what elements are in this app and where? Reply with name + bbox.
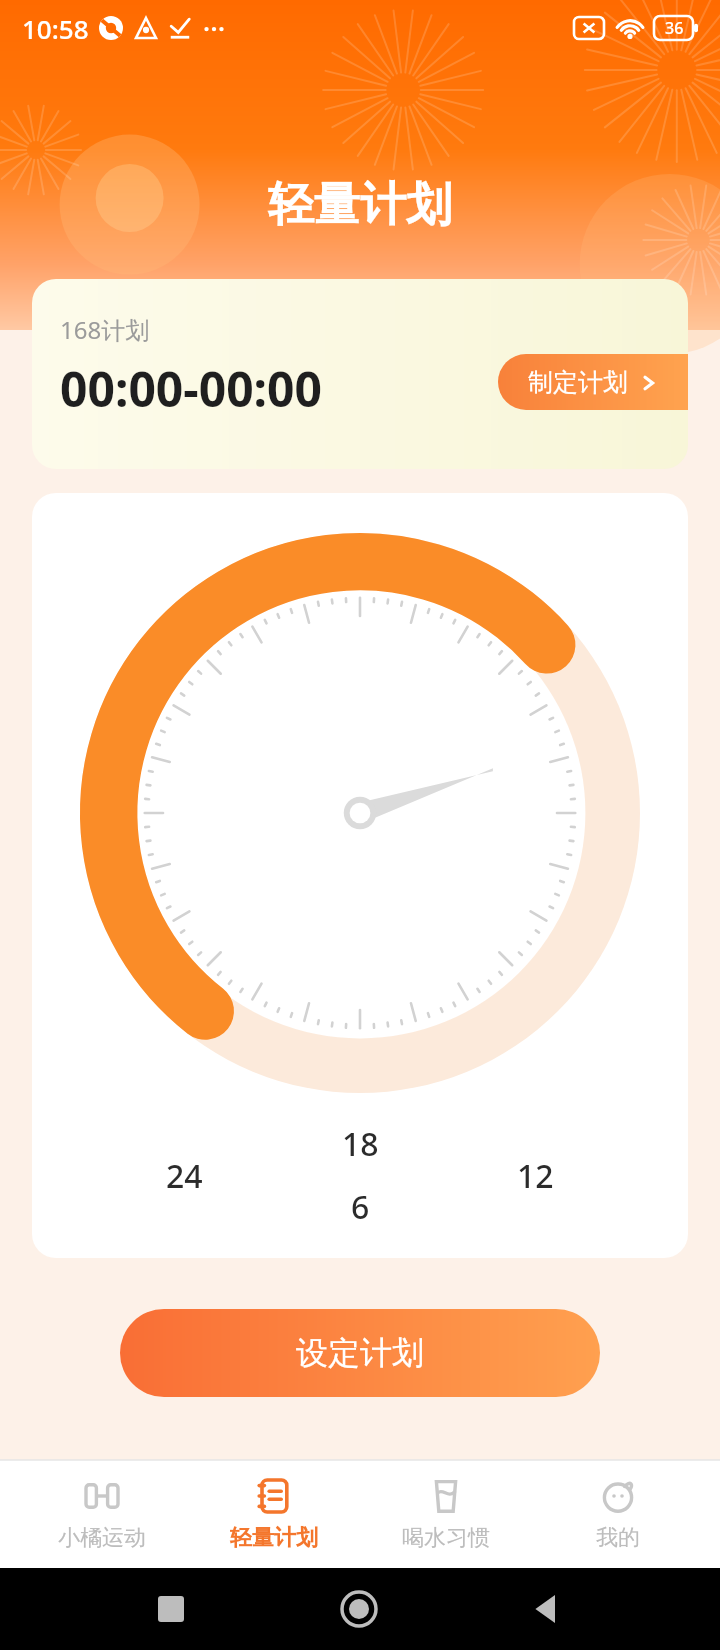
- staticText: 36: [665, 17, 684, 39]
- staticText: 12: [517, 1154, 554, 1198]
- button[interactable]: 我的: [548, 1460, 688, 1568]
- staticText: 设定计划: [296, 1333, 424, 1373]
- button[interactable]: 喝水习惯: [376, 1460, 516, 1568]
- staticText: 24: [166, 1154, 203, 1198]
- staticText: 168计划: [60, 313, 150, 346]
- button[interactable]: Home: [342, 1592, 376, 1626]
- staticText: 我的: [596, 1524, 640, 1552]
- button[interactable]: 轻量计划: [204, 1460, 344, 1568]
- staticText: 6: [351, 1185, 370, 1229]
- button[interactable]: 设定计划: [120, 1309, 600, 1397]
- button[interactable]: 小橘运动: [32, 1460, 172, 1568]
- staticText: 喝水习惯: [402, 1524, 490, 1552]
- button[interactable]: 制定计划: [498, 354, 688, 410]
- staticText: 轻量计划: [0, 176, 720, 234]
- button[interactable]: Back: [534, 1595, 562, 1623]
- button[interactable]: Recent apps: [158, 1596, 184, 1622]
- staticText: 18: [342, 1122, 379, 1166]
- staticText: 10:58: [22, 11, 89, 46]
- staticText: 00:00-00:00: [60, 356, 322, 421]
- staticText: 轻量计划: [230, 1524, 318, 1552]
- staticText: 小橘运动: [58, 1524, 146, 1552]
- staticText: 制定计划: [528, 367, 628, 398]
- button[interactable]: 168计划: [32, 279, 688, 469]
